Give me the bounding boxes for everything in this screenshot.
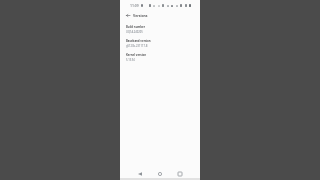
button[interactable]: Back bbox=[124, 12, 131, 19]
staticText: Kernel version bbox=[126, 53, 147, 57]
button[interactable]: Kernel version bbox=[120, 53, 200, 67]
button[interactable]: Recent apps bbox=[176, 170, 184, 178]
staticText: Build number bbox=[126, 25, 145, 29]
staticText: Versions bbox=[133, 13, 148, 18]
button[interactable]: Baseband version bbox=[120, 39, 200, 53]
staticText: 11:09 bbox=[130, 3, 139, 8]
button[interactable]: Back bbox=[136, 170, 144, 178]
staticText: UQ1A.240205 bbox=[126, 30, 143, 34]
button[interactable]: Home bbox=[156, 170, 164, 178]
staticText: g5123b-231117-B bbox=[126, 44, 148, 48]
button[interactable]: Build number bbox=[120, 25, 200, 39]
staticText: Baseband version bbox=[126, 39, 151, 43]
staticText: 5.15.94 bbox=[126, 58, 135, 62]
